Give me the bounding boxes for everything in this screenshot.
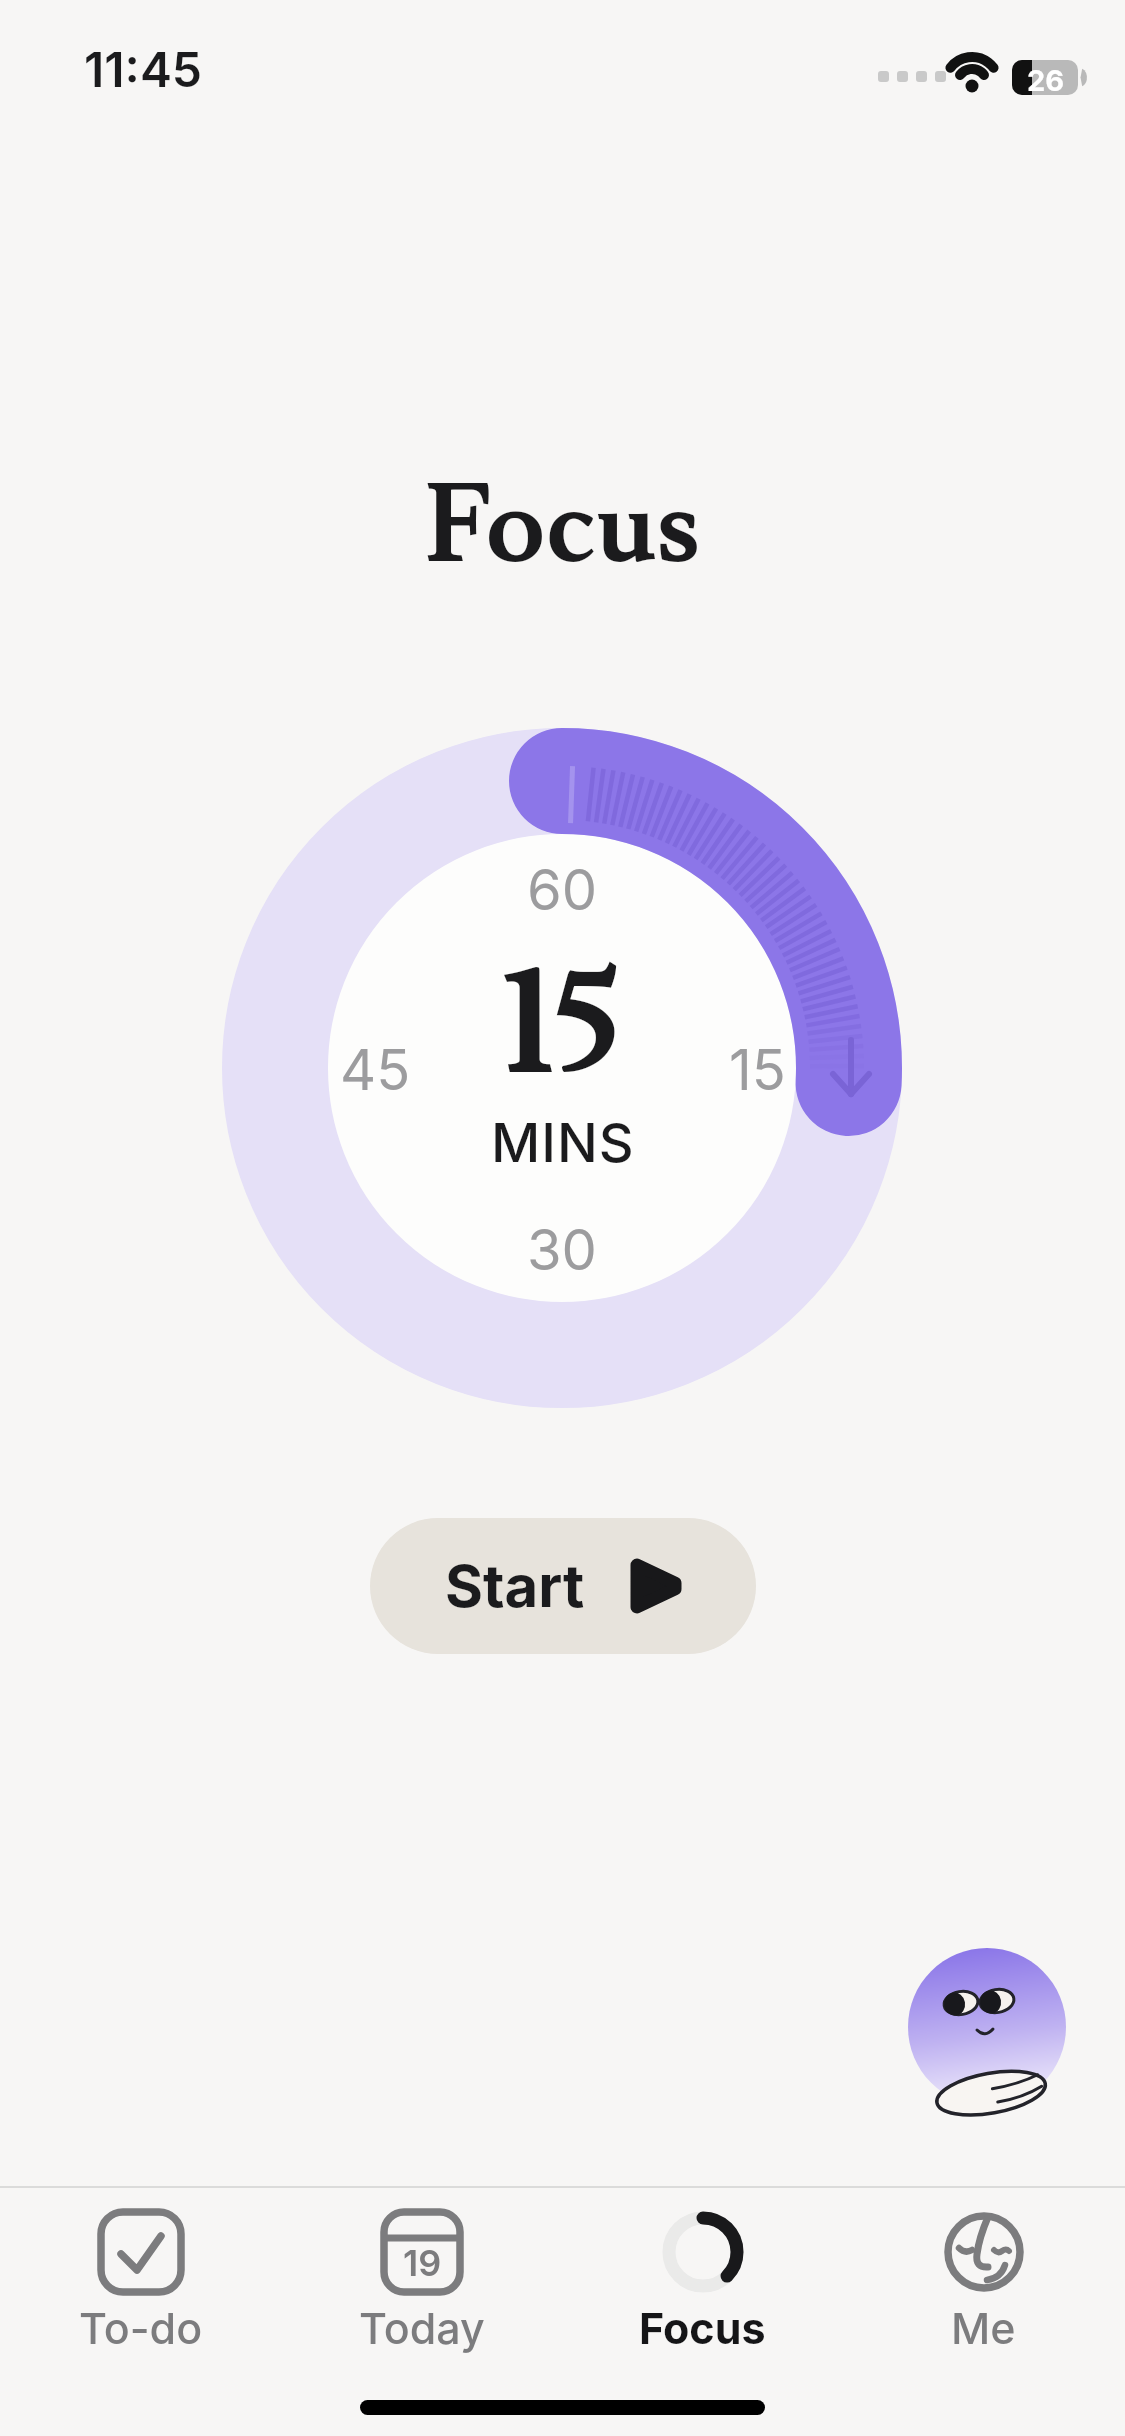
staticText: Today (359, 2302, 485, 2354)
staticText: Focus (424, 458, 701, 598)
staticText: To-do (79, 2302, 203, 2354)
button[interactable]: To-do (0, 2210, 281, 2354)
button[interactable]: Start (370, 1518, 756, 1654)
staticText: 19 (403, 2241, 442, 2285)
button[interactable]: Focus (562, 2210, 843, 2354)
button[interactable]: 19 (281, 2210, 562, 2354)
staticText: 30 (527, 1216, 597, 1284)
staticText: 15 (504, 931, 622, 1123)
staticText: Focus (639, 2302, 766, 2354)
staticText: Start (445, 1551, 585, 1621)
button[interactable]: Me (843, 2210, 1124, 2354)
staticText: 15 (729, 1036, 786, 1104)
staticText: 60 (527, 856, 598, 924)
staticText: MINS (491, 1110, 635, 1175)
staticText: 45 (340, 1036, 411, 1104)
staticText: Me (951, 2302, 1016, 2354)
button[interactable] (898, 1938, 1076, 2116)
staticText: 26 (1027, 63, 1065, 98)
staticText: 11:45 (84, 40, 203, 98)
